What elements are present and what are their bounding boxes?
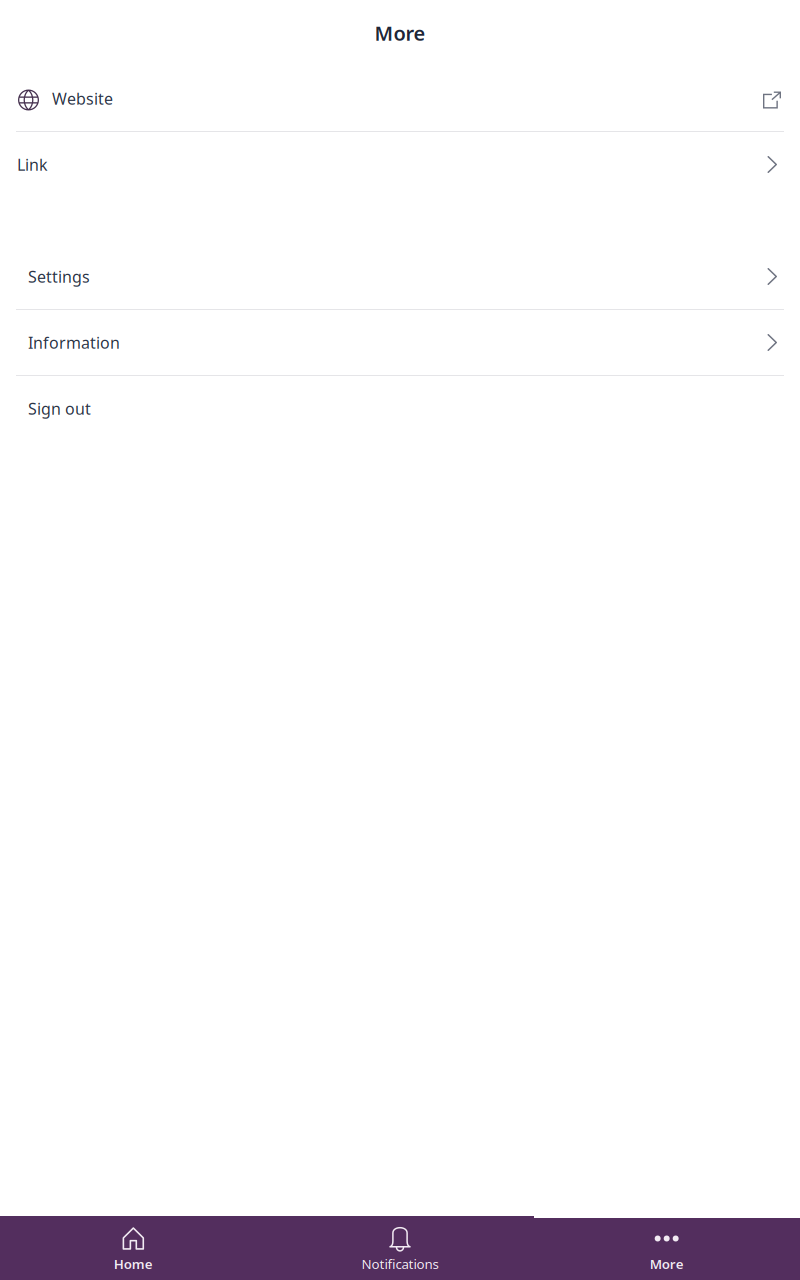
staticText: Settings (28, 266, 90, 287)
button[interactable]: Link (0, 132, 800, 197)
staticText: More (374, 20, 425, 46)
button[interactable]: Sign out (0, 376, 800, 441)
staticText: Home (114, 1255, 153, 1273)
staticText: Information (28, 332, 120, 353)
button[interactable]: Settings (0, 244, 800, 309)
staticText: Notifications (361, 1255, 438, 1273)
staticText: Sign out (28, 398, 91, 419)
button[interactable]: Website (0, 66, 800, 131)
staticText: More (650, 1255, 684, 1273)
staticText: Link (17, 154, 48, 175)
button[interactable]: Home (0, 1216, 267, 1280)
button[interactable]: Notifications (267, 1216, 533, 1280)
button[interactable]: Information (0, 310, 800, 375)
button[interactable]: More (533, 1216, 800, 1280)
staticText: Website (52, 88, 113, 109)
